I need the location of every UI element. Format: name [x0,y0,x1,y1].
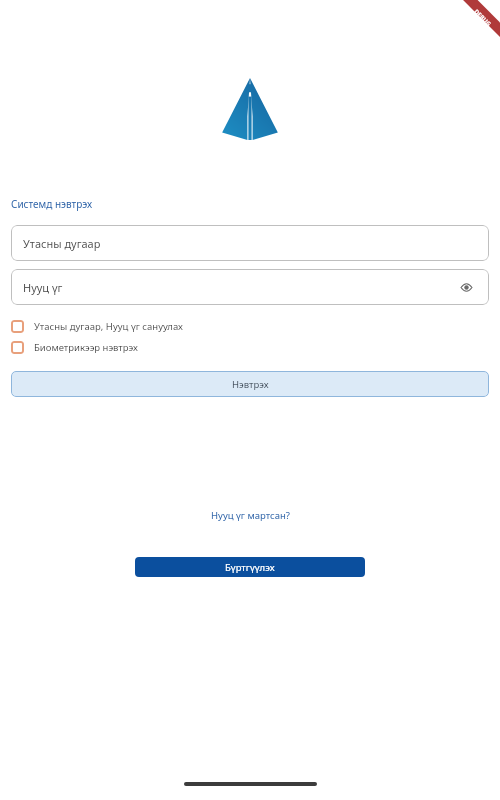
staticText: Нууц үг [23,280,63,295]
staticText: Нууц үг мартсан? [211,509,290,522]
button[interactable]: Утасны дугаар, Нууц үг сануулах [11,317,489,336]
staticText: DEBUG [472,8,493,28]
button[interactable]: Нэвтрэх [11,371,489,397]
button[interactable]: Нууц үг мартсан? [201,505,300,526]
staticText: Биометрикээр нэвтрэх [34,341,138,354]
staticText: Системд нэвтрэх [11,197,93,211]
button[interactable]: Биометрикээр нэвтрэх [11,338,489,357]
staticText: Бүртгүүлэх [225,561,275,574]
button[interactable]: Бүртгүүлэх [135,557,365,577]
staticText: Утасны дугаар [23,236,101,251]
button[interactable]: Утасны дугаар [11,225,489,261]
button[interactable]: Нууц үг [11,269,489,305]
button[interactable]: Show password [455,276,477,298]
staticText: Нэвтрэх [232,378,269,391]
staticText: Утасны дугаар, Нууц үг сануулах [34,320,183,333]
